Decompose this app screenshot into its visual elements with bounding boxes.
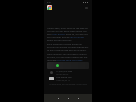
button[interactable]: Card ending 4321 (47, 76, 89, 81)
button[interactable]: Menu (84, 6, 88, 10)
staticText: Card ending 4321 (56, 76, 73, 79)
staticText: with your profile. Even so, you will sti… (47, 33, 88, 36)
button[interactable]: Home (66, 96, 70, 100)
button[interactable]: Recents (76, 96, 80, 100)
staticText: Each important screen allows an (47, 43, 82, 46)
staticText: Verified phone (56, 73, 69, 75)
staticText: about account security. (47, 39, 73, 42)
staticText: message that we send you today. (47, 59, 83, 62)
staticText: account on Google Chrome significant (47, 46, 89, 49)
staticText: an hour, you can keep a watch for the (47, 56, 88, 59)
button[interactable]: App icon (47, 5, 52, 10)
staticText: to use a new profile with an account. (47, 49, 87, 52)
staticText: Once another APK are now in use for (47, 53, 87, 56)
staticText: Unlike apps, most sites on the web do (47, 27, 88, 30)
button[interactable]: +1 (555) 012-3456 (47, 62, 89, 85)
button[interactable]: Back (56, 96, 60, 100)
staticText: get a prompt and we let you know here (47, 36, 89, 39)
button[interactable]: +1 (555) 012-3456 (47, 70, 89, 75)
staticText: not ask you for extra steps when you ver… (47, 30, 89, 33)
staticText: Added on Jan 18 (56, 79, 70, 81)
staticText: +1 (555) 012-3456 (56, 70, 73, 73)
staticText: 9:41 (47, 1, 52, 4)
staticText: To learn more, visit the Google Account … (47, 83, 89, 85)
